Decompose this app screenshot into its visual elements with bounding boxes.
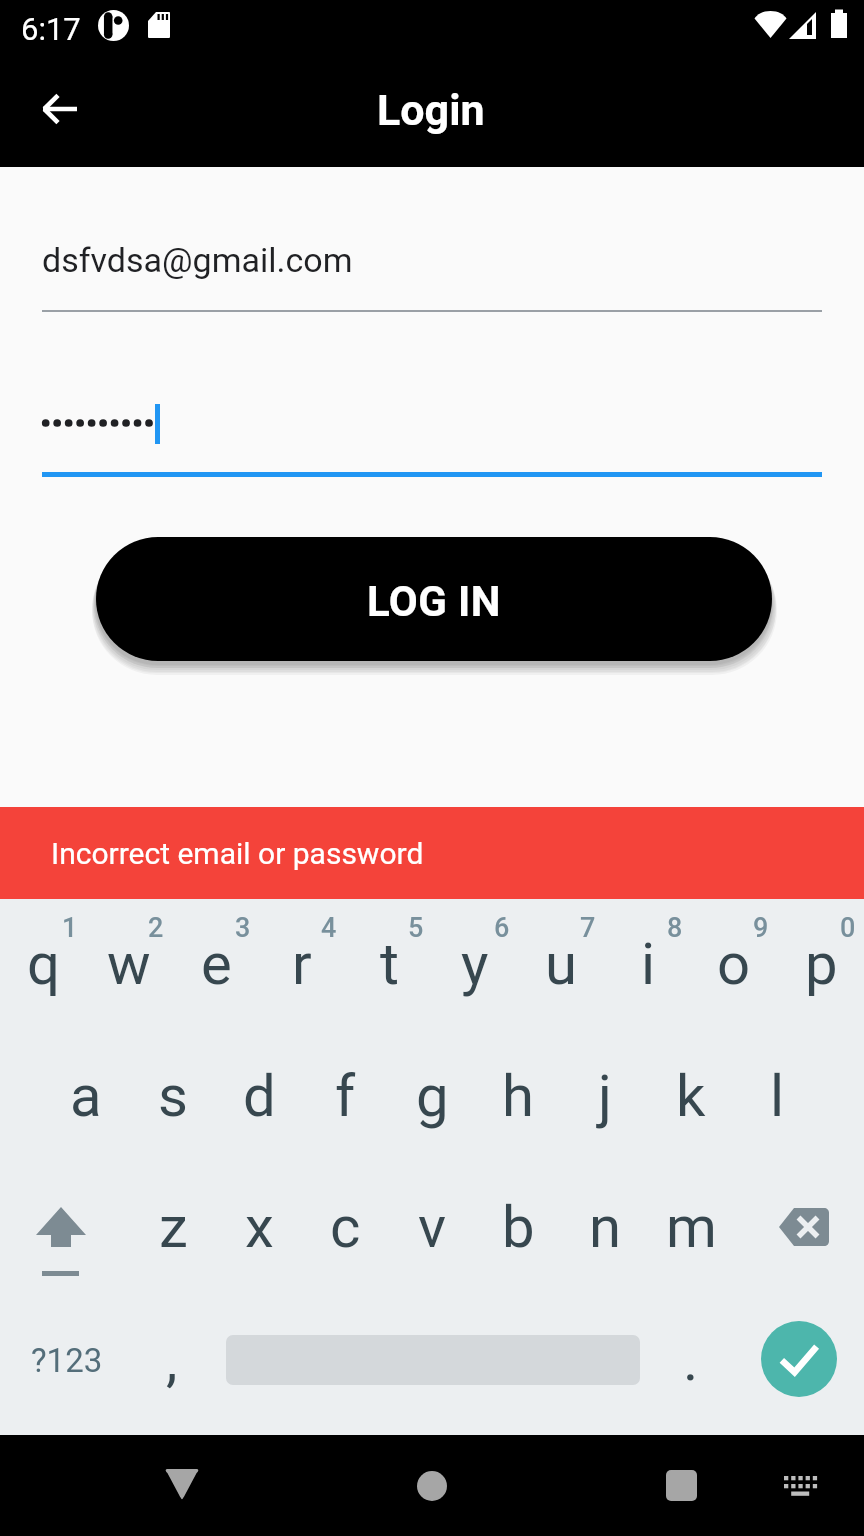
staticText: 0 bbox=[840, 912, 856, 944]
button[interactable]: f bbox=[302, 1038, 388, 1154]
button[interactable]: 9 bbox=[718, 888, 804, 968]
staticText: 6:17 bbox=[21, 11, 81, 47]
button[interactable]: 5 bbox=[373, 888, 459, 968]
staticText: 5 bbox=[408, 912, 424, 944]
button[interactable]: b bbox=[475, 1169, 561, 1285]
staticText: c bbox=[330, 1193, 361, 1261]
button[interactable]: 4 bbox=[286, 888, 372, 968]
staticText: Incorrect email or password bbox=[51, 836, 424, 871]
button[interactable]: 3 bbox=[200, 888, 286, 968]
staticText: t bbox=[380, 930, 399, 998]
staticText: 4 bbox=[321, 912, 337, 944]
button[interactable]: LOG IN bbox=[96, 537, 772, 661]
staticText: 6 bbox=[494, 912, 510, 944]
button[interactable]: Back bbox=[132, 1435, 232, 1536]
staticText: 7 bbox=[580, 912, 596, 944]
staticText: y bbox=[461, 930, 489, 998]
button[interactable]: g bbox=[389, 1038, 475, 1154]
staticText: x bbox=[245, 1193, 274, 1261]
button[interactable]: a bbox=[43, 1038, 129, 1154]
button[interactable]: Home bbox=[382, 1435, 482, 1536]
staticText: Login bbox=[377, 85, 485, 135]
button[interactable]: w bbox=[86, 906, 172, 1022]
button[interactable]: Recent apps bbox=[631, 1435, 731, 1536]
staticText: n bbox=[589, 1193, 622, 1261]
button[interactable]: c bbox=[302, 1169, 388, 1285]
staticText: i bbox=[641, 930, 656, 998]
button[interactable]: 1 bbox=[27, 888, 113, 968]
button[interactable]: v bbox=[389, 1169, 475, 1285]
staticText: LOG IN bbox=[367, 577, 501, 626]
staticText: , bbox=[166, 1326, 178, 1394]
button[interactable]: . bbox=[648, 1302, 734, 1418]
button[interactable]: 8 bbox=[632, 888, 718, 968]
button[interactable]: t bbox=[346, 906, 432, 1022]
staticText: j bbox=[598, 1062, 612, 1130]
staticText: 8 bbox=[667, 912, 683, 944]
staticText: q bbox=[27, 930, 60, 998]
staticText: z bbox=[159, 1193, 188, 1261]
staticText: k bbox=[676, 1062, 706, 1130]
staticText: 1 bbox=[62, 912, 78, 944]
staticText: b bbox=[502, 1193, 535, 1261]
staticText: v bbox=[418, 1193, 447, 1261]
button[interactable]: Switch keyboard bbox=[756, 1435, 856, 1536]
button[interactable]: 6 bbox=[459, 888, 545, 968]
staticText: . bbox=[683, 1326, 699, 1394]
button[interactable]: Done bbox=[761, 1321, 837, 1397]
staticText: dsfvdsa@gmail.com bbox=[42, 240, 353, 280]
staticText: a bbox=[70, 1062, 102, 1130]
staticText: ?123 bbox=[31, 1341, 103, 1380]
button[interactable]: r bbox=[259, 906, 345, 1022]
button[interactable]: y bbox=[432, 906, 518, 1022]
button[interactable]: z bbox=[130, 1169, 216, 1285]
staticText: e bbox=[201, 930, 232, 998]
button[interactable]: , bbox=[129, 1302, 215, 1418]
staticText: 2 bbox=[148, 912, 164, 944]
button[interactable]: o bbox=[691, 906, 777, 1022]
button[interactable]: Back bbox=[11, 61, 107, 157]
button[interactable]: h bbox=[475, 1038, 561, 1154]
button[interactable]: e bbox=[173, 906, 259, 1022]
button[interactable]: 0 bbox=[805, 888, 864, 968]
staticText: h bbox=[502, 1062, 534, 1130]
staticText: d bbox=[243, 1062, 276, 1130]
staticText: 9 bbox=[753, 912, 769, 944]
button[interactable]: j bbox=[562, 1038, 648, 1154]
staticText: g bbox=[416, 1062, 449, 1130]
staticText: p bbox=[805, 930, 838, 998]
staticText: o bbox=[717, 930, 751, 998]
button[interactable]: Shift bbox=[0, 1190, 130, 1290]
button[interactable]: x bbox=[216, 1169, 302, 1285]
button[interactable]: k bbox=[648, 1038, 734, 1154]
button[interactable]: 7 bbox=[545, 888, 631, 968]
button[interactable]: u bbox=[518, 906, 604, 1022]
staticText: u bbox=[545, 930, 577, 998]
button[interactable]: n bbox=[562, 1169, 648, 1285]
button[interactable]: m bbox=[648, 1169, 734, 1285]
staticText: s bbox=[158, 1062, 188, 1130]
staticText: 3 bbox=[235, 912, 251, 944]
staticText: w bbox=[107, 930, 151, 998]
button[interactable]: p bbox=[778, 906, 864, 1022]
button[interactable]: ?123 bbox=[0, 1312, 130, 1402]
button[interactable]: 2 bbox=[113, 888, 199, 968]
staticText: r bbox=[292, 930, 312, 998]
button[interactable]: d bbox=[216, 1038, 302, 1154]
button[interactable]: Backspace bbox=[734, 1200, 864, 1260]
button[interactable]: q bbox=[0, 906, 86, 1022]
button[interactable]: s bbox=[130, 1038, 216, 1154]
staticText: m bbox=[666, 1193, 717, 1261]
button[interactable]: i bbox=[605, 906, 691, 1022]
staticText: l bbox=[770, 1062, 785, 1130]
button[interactable]: l bbox=[734, 1038, 820, 1154]
staticText: f bbox=[335, 1062, 356, 1130]
